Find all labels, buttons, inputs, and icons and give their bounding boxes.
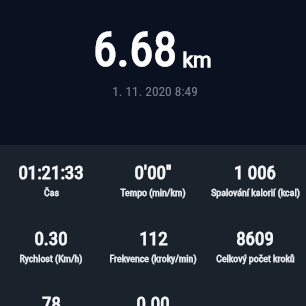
staticText: 01:21:33 <box>18 161 84 183</box>
button[interactable]: 78 <box>0 292 102 306</box>
staticText: Rychlost (Km/h) <box>19 253 83 265</box>
staticText: 112 <box>139 227 168 249</box>
button[interactable]: 8609 <box>204 227 306 267</box>
button[interactable]: 01:21:33 <box>0 161 102 201</box>
staticText: 0'00'' <box>134 161 172 183</box>
staticText: 8609 <box>236 227 274 249</box>
button[interactable]: 1 006 <box>204 161 306 201</box>
staticText: Spalování kalorií (kcal) <box>211 187 300 199</box>
staticText: 0.00 <box>136 292 170 306</box>
staticText: 1. 11. 2020 8:49 <box>112 84 198 100</box>
staticText: 0.30 <box>34 227 68 249</box>
button[interactable]: 112 <box>102 227 204 267</box>
button[interactable]: 0.30 <box>0 227 102 267</box>
button[interactable]: 0.00 <box>102 292 204 306</box>
staticText: 1 006 <box>234 161 276 183</box>
staticText: 6.68 <box>93 21 177 77</box>
staticText: Čas <box>44 187 59 199</box>
staticText: 78 <box>42 292 61 306</box>
staticText: Tempo (min/km) <box>120 187 186 199</box>
staticText: Frekvence (kroky/min) <box>109 253 197 265</box>
staticText: Celkový počet kroků <box>216 253 295 265</box>
staticText: km <box>182 48 212 73</box>
button[interactable]: 0'00'' <box>102 161 204 201</box>
